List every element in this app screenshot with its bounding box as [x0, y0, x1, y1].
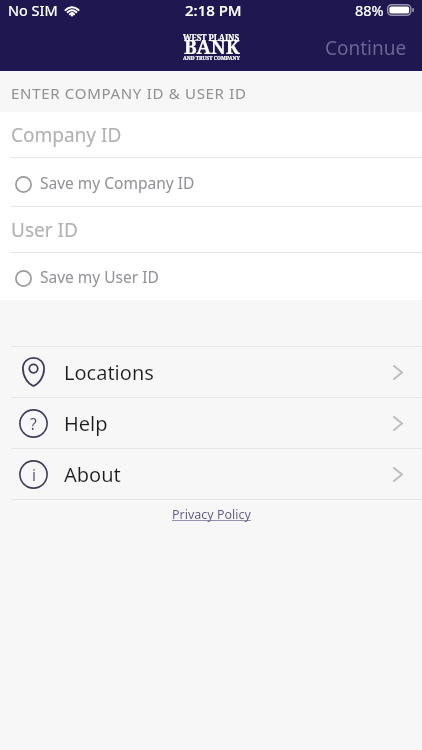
staticText: Continue [325, 35, 407, 60]
button[interactable]: Privacy Policy [164, 500, 259, 523]
staticText: ? [30, 413, 37, 434]
staticText: AND TRUST COMPANY [183, 55, 240, 62]
other: Battery 88 percent [387, 4, 415, 16]
staticText: i [32, 464, 36, 485]
staticText: BANK [184, 34, 240, 60]
other: West Plains Bank and Trust Company [211, 33, 212, 61]
button[interactable]: ? [0, 398, 422, 448]
other: Wi-Fi signal [63, 4, 81, 17]
staticText: Save my Company ID [40, 172, 195, 193]
staticText: Privacy Policy [172, 506, 251, 523]
staticText: About [64, 461, 121, 488]
staticText: WEST PLAINS [183, 32, 240, 43]
staticText: No SIM [8, 0, 58, 20]
button[interactable]: Save my Company ID [0, 158, 422, 206]
staticText: 88% [355, 0, 384, 20]
button[interactable]: Continue [307, 24, 422, 71]
button[interactable]: Save my User ID [0, 253, 422, 300]
button[interactable]: Company ID [0, 112, 422, 157]
staticText: Save my User ID [40, 266, 159, 287]
staticText: ENTER COMPANY ID & USER ID [11, 83, 247, 103]
staticText: Locations [64, 359, 154, 386]
button[interactable]: Locations [0, 347, 422, 397]
staticText: Help [64, 410, 108, 437]
staticText: 2:18 PM [185, 0, 242, 20]
staticText: Company ID [11, 122, 122, 148]
button[interactable]: i [0, 449, 422, 499]
button[interactable]: User ID [0, 207, 422, 252]
staticText: User ID [11, 217, 78, 243]
